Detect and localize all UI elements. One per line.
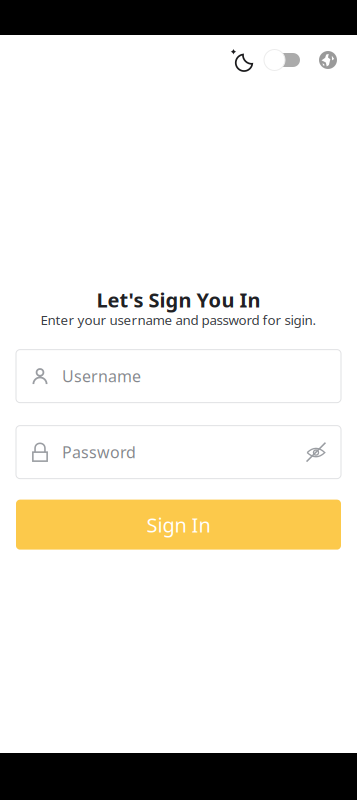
- staticText: Sign In: [146, 511, 210, 538]
- staticText: Enter your username and password for sig…: [40, 311, 316, 329]
- button[interactable]: Language: [300, 47, 337, 73]
- button[interactable]: Dark mode: [230, 44, 254, 76]
- staticText: Let's Sign You In: [96, 286, 260, 313]
- staticText: Password: [62, 441, 136, 463]
- staticText: Username: [62, 365, 141, 387]
- button[interactable]: Sign In: [16, 500, 341, 550]
- button[interactable]: Show password: [305, 441, 327, 463]
- button[interactable]: Toggle theme: [254, 45, 300, 74]
